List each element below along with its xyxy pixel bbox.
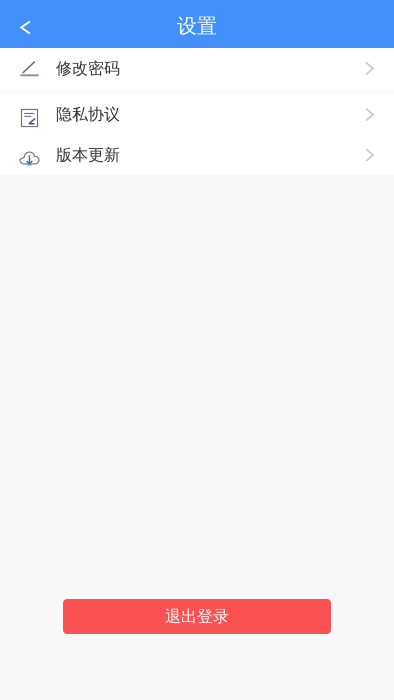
button[interactable]: Back [0,5,51,49]
staticText: 隐私协议 [56,105,120,124]
staticText: 版本更新 [56,145,120,165]
button[interactable]: 隐私协议 [0,94,394,135]
button[interactable]: 退出登录 [63,599,331,634]
staticText: 修改密码 [56,59,120,78]
button[interactable]: 版本更新 [0,135,394,175]
staticText: 退出登录 [165,607,229,626]
staticText: 设置 [177,14,217,38]
button[interactable]: 修改密码 [0,48,394,89]
